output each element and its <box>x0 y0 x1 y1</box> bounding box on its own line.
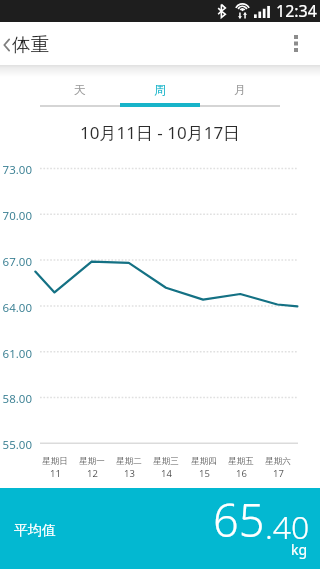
staticText: 67.00 <box>0 254 32 270</box>
staticText: 10月11日 - 10月17日 <box>80 121 241 144</box>
staticText: 星期日 <box>42 456 68 467</box>
staticText: 12:34 <box>276 0 317 22</box>
staticText: 15 <box>199 467 210 480</box>
staticText: .40 <box>265 505 310 549</box>
staticText: 58.00 <box>0 391 32 407</box>
staticText: 平均值 <box>14 522 56 540</box>
button[interactable]: Back <box>0 27 59 62</box>
staticText: kg <box>291 540 308 559</box>
staticText: 16 <box>236 467 247 480</box>
staticText: 星期四 <box>191 456 217 467</box>
button[interactable]: 月 <box>200 74 280 107</box>
button[interactable]: 平均值 <box>0 488 320 569</box>
other: Back <box>2 38 11 52</box>
staticText: 14 <box>161 467 172 480</box>
staticText: 星期二 <box>116 456 142 467</box>
staticText: 55.00 <box>0 437 32 453</box>
button[interactable]: 周 <box>120 74 200 107</box>
staticText: 星期三 <box>153 456 179 467</box>
staticText: 73.00 <box>0 162 32 178</box>
staticText: 月 <box>234 82 246 97</box>
staticText: 星期五 <box>228 456 254 467</box>
staticText: 65 <box>213 489 265 550</box>
staticText: 星期一 <box>79 456 105 467</box>
staticText: 64.00 <box>0 300 32 316</box>
button[interactable]: More options <box>276 22 320 66</box>
staticText: 12 <box>87 467 98 480</box>
button[interactable]: 天 <box>40 74 120 107</box>
staticText: 70.00 <box>0 208 32 224</box>
staticText: 天 <box>74 82 86 97</box>
staticText: 17 <box>273 467 284 480</box>
staticText: 星期六 <box>265 456 291 467</box>
staticText: 周 <box>154 82 166 97</box>
staticText: 11 <box>50 467 61 480</box>
staticText: 61.00 <box>0 346 32 362</box>
staticText: 体重 <box>12 33 49 56</box>
staticText: 13 <box>124 467 135 480</box>
